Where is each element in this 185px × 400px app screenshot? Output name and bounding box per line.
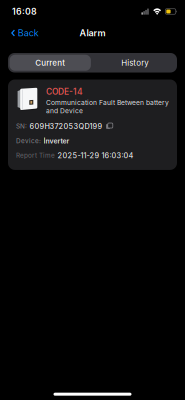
staticText: Current: [35, 58, 65, 68]
button[interactable]: History: [92, 53, 177, 72]
button[interactable]: Current: [8, 53, 92, 72]
staticText: Device:: [16, 137, 41, 145]
staticText: 609H372053QD199: [29, 122, 102, 131]
button[interactable]: Copy serial number: [105, 122, 114, 130]
staticText: CODE-14: [46, 86, 83, 97]
staticText: History: [121, 58, 148, 68]
staticText: Alarm: [79, 27, 105, 38]
staticText: SN:: [16, 122, 27, 130]
staticText: Inverter: [43, 137, 69, 145]
button[interactable]: CODE-14: [8, 79, 177, 170]
staticText: Report Time: [16, 152, 55, 159]
staticText: Communication Fault Between battery and …: [46, 99, 169, 115]
staticText: 16:08: [12, 6, 37, 17]
staticText: 2025-11-29 16:03:04: [57, 151, 133, 160]
button[interactable]: Back: [0, 23, 48, 42]
staticText: Back: [18, 27, 39, 38]
